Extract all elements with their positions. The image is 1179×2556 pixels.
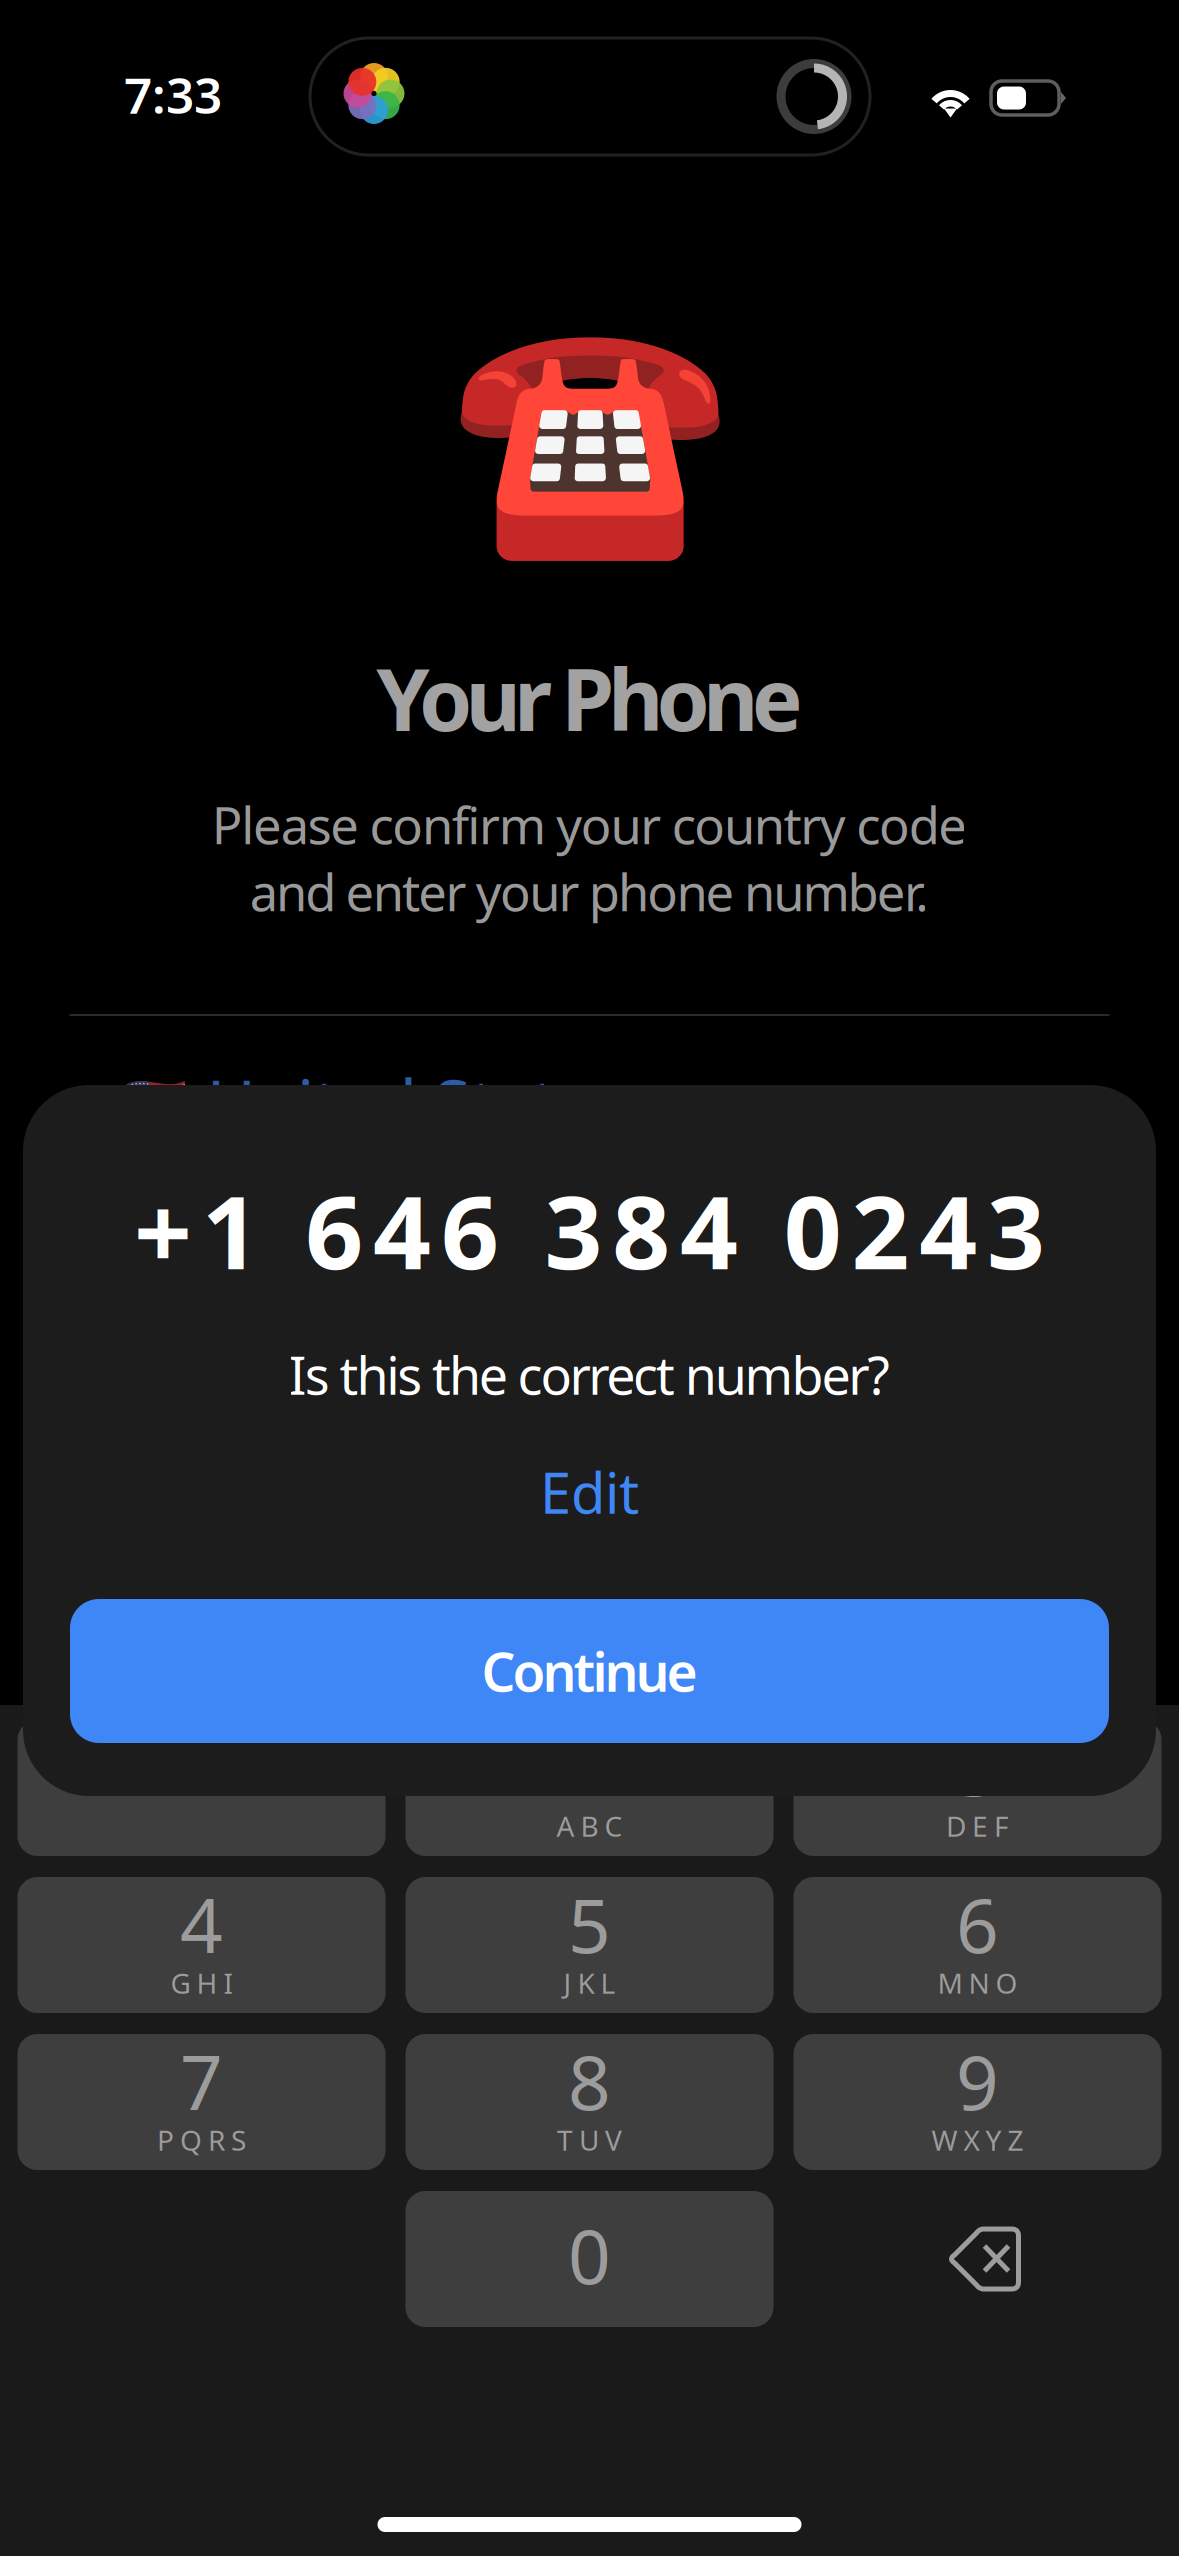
staticText: 1 [180,1717,223,1817]
staticText: United States [207,1059,626,1147]
staticText: Your Phone [376,641,803,755]
button[interactable]: 9 [793,2034,1161,2170]
button[interactable]: 4 [17,1877,385,2013]
staticText: +1 646 384 0243 [134,1163,1045,1297]
staticText: 7:33 [124,62,222,127]
staticText: ABC [556,1807,622,1845]
staticText: 🇺🇸 [124,1074,187,1132]
staticText: MNO [937,1964,1017,2002]
staticText: TUV [557,2121,622,2159]
staticText: Is this the correct number? [289,1340,890,1409]
staticText: WXYZ [931,2121,1023,2159]
button[interactable]: 5 [405,1877,773,2013]
staticText: Edit [540,1455,639,1529]
staticText: ☎️ [448,307,730,566]
staticText: JKL [563,1964,615,2002]
staticText: DEF [946,1807,1009,1845]
button[interactable]: 0 [405,2191,773,2327]
staticText: and enter your phone number. [250,858,929,925]
button[interactable]: 3 [793,1720,1161,1856]
button[interactable]: 8 [405,2034,773,2170]
staticText: 6 [956,1874,999,1974]
button[interactable]: Delete [793,2191,1161,2327]
staticText: 7 [180,2031,223,2131]
button[interactable]: Continue [70,1599,1109,1743]
staticText: Continue [481,1636,697,1706]
staticText: 3 [956,1717,999,1817]
button[interactable]: 1 [17,1720,385,1856]
staticText: Please confirm your country code [212,791,967,858]
button[interactable]: 6 [793,1877,1161,2013]
staticText: 4 [180,1874,223,1974]
button[interactable]: 2 [405,1720,773,1856]
staticText: 2 [568,1717,611,1817]
staticText: GHI [170,1964,232,2002]
staticText: PQRS [157,2121,246,2159]
staticText: 0 [568,2205,611,2305]
staticText: 8 [568,2031,611,2131]
button[interactable]: 7 [17,2034,385,2170]
staticText: 5 [568,1874,611,1974]
button[interactable]: Edit [479,1455,699,1529]
staticText: 9 [956,2031,999,2131]
